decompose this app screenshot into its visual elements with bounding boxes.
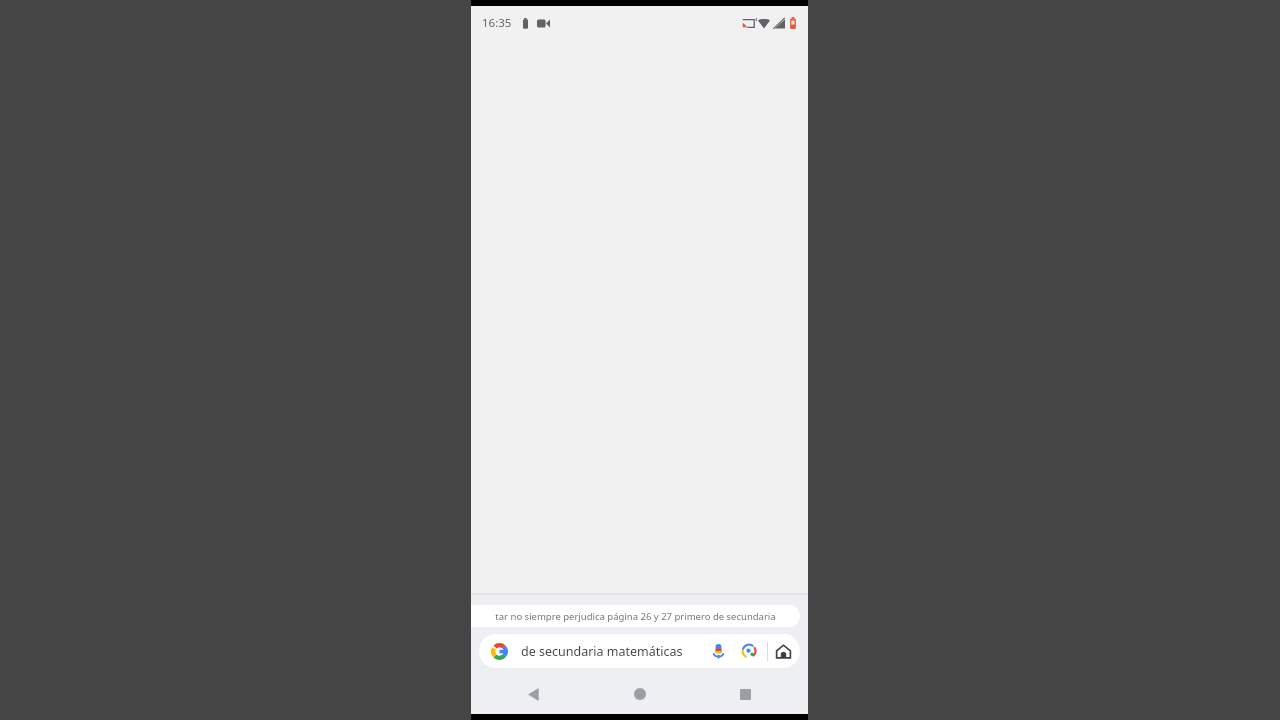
button[interactable]: Google Lens [736,638,762,664]
button[interactable]: Home [768,636,798,666]
button[interactable]: Recent apps [724,674,766,714]
button[interactable]: Voice search [705,638,731,664]
button[interactable]: Back [513,674,555,714]
staticText: 16:35 [482,15,512,31]
staticText: de secundaria matemáticas [521,643,683,660]
button[interactable]: tar no siempre perjudica página 26 y 27 … [471,605,800,627]
staticText: tar no siempre perjudica página 26 y 27 … [471,610,800,623]
button[interactable]: Home [619,674,661,714]
button[interactable]: de secundaria matemáticas [479,634,800,668]
